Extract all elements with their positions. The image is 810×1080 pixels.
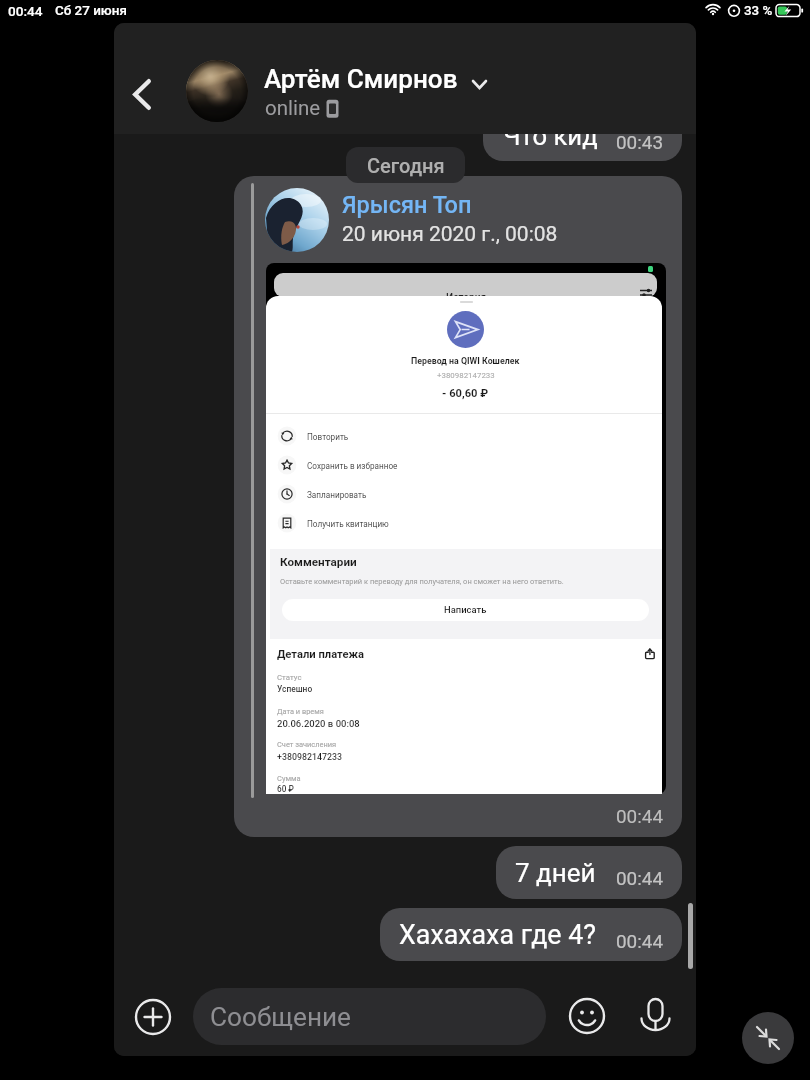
staticText: +380982147233: [277, 752, 342, 762]
staticText: 20 июня 2020 г., 00:08: [342, 222, 558, 247]
button[interactable]: Повторить: [266, 422, 662, 450]
button[interactable]: Ярысян Топ: [234, 176, 682, 837]
button[interactable]: [380, 908, 682, 961]
staticText: Статус: [277, 673, 302, 682]
staticText: Перевод на QIWI Кошелек: [411, 356, 520, 366]
button[interactable]: [483, 134, 682, 161]
staticText: online: [265, 96, 321, 120]
button[interactable]: Сообщение: [193, 988, 546, 1045]
button[interactable]: [262, 62, 492, 122]
button[interactable]: [496, 846, 682, 899]
staticText: Ярысян Топ: [342, 191, 472, 219]
staticText: Сохранить в избранное: [307, 461, 398, 471]
staticText: Получить квитанцию: [307, 519, 389, 529]
staticText: Сумма: [277, 774, 301, 783]
staticText: Успешно: [277, 684, 313, 694]
staticText: 00:43: [616, 134, 664, 153]
staticText: Запланировать: [307, 490, 367, 500]
staticText: Что кид: [503, 134, 598, 151]
button[interactable]: Voice message: [637, 996, 673, 1038]
staticText: Детали платежа: [277, 648, 365, 661]
button[interactable]: Получить квитанцию: [266, 509, 662, 537]
button[interactable]: Emoji: [569, 998, 605, 1034]
staticText: 00:44: [616, 805, 664, 827]
staticText: Написать: [444, 604, 487, 615]
staticText: +380982147233: [437, 371, 495, 380]
staticText: Артём Смирнов: [264, 64, 458, 94]
staticText: Оставьте комментарий к переводу для полу…: [280, 577, 564, 586]
staticText: 7 дней: [515, 858, 596, 888]
button[interactable]: Сохранить в избранное: [266, 451, 662, 479]
button[interactable]: Profile photo: [186, 60, 248, 122]
button[interactable]: Minimize: [742, 1012, 794, 1064]
button[interactable]: Attach: [135, 999, 171, 1035]
button[interactable]: Back: [114, 69, 166, 123]
staticText: 00:44: [8, 3, 43, 19]
staticText: Хахахаха где 4?: [399, 919, 596, 950]
button[interactable]: Запланировать: [266, 480, 662, 508]
staticText: 20.06.2020 в 00:08: [277, 718, 360, 729]
staticText: Дата и время: [277, 707, 324, 716]
staticText: Сб 27 июня: [55, 3, 127, 19]
staticText: 60 ₽: [277, 784, 294, 794]
staticText: Повторить: [307, 432, 349, 442]
staticText: История: [446, 292, 487, 304]
staticText: 33 %: [744, 3, 773, 19]
staticText: Комментарии: [280, 555, 357, 569]
staticText: Сообщение: [210, 1002, 352, 1033]
staticText: 00:44: [616, 930, 664, 952]
staticText: 00:44: [616, 867, 664, 889]
button[interactable]: [282, 599, 649, 621]
button[interactable]: Сегодня: [346, 147, 465, 183]
staticText: Сегодня: [367, 154, 445, 177]
staticText: Счет зачисления: [277, 740, 337, 749]
staticText: - 60,60 ₽: [442, 387, 489, 400]
